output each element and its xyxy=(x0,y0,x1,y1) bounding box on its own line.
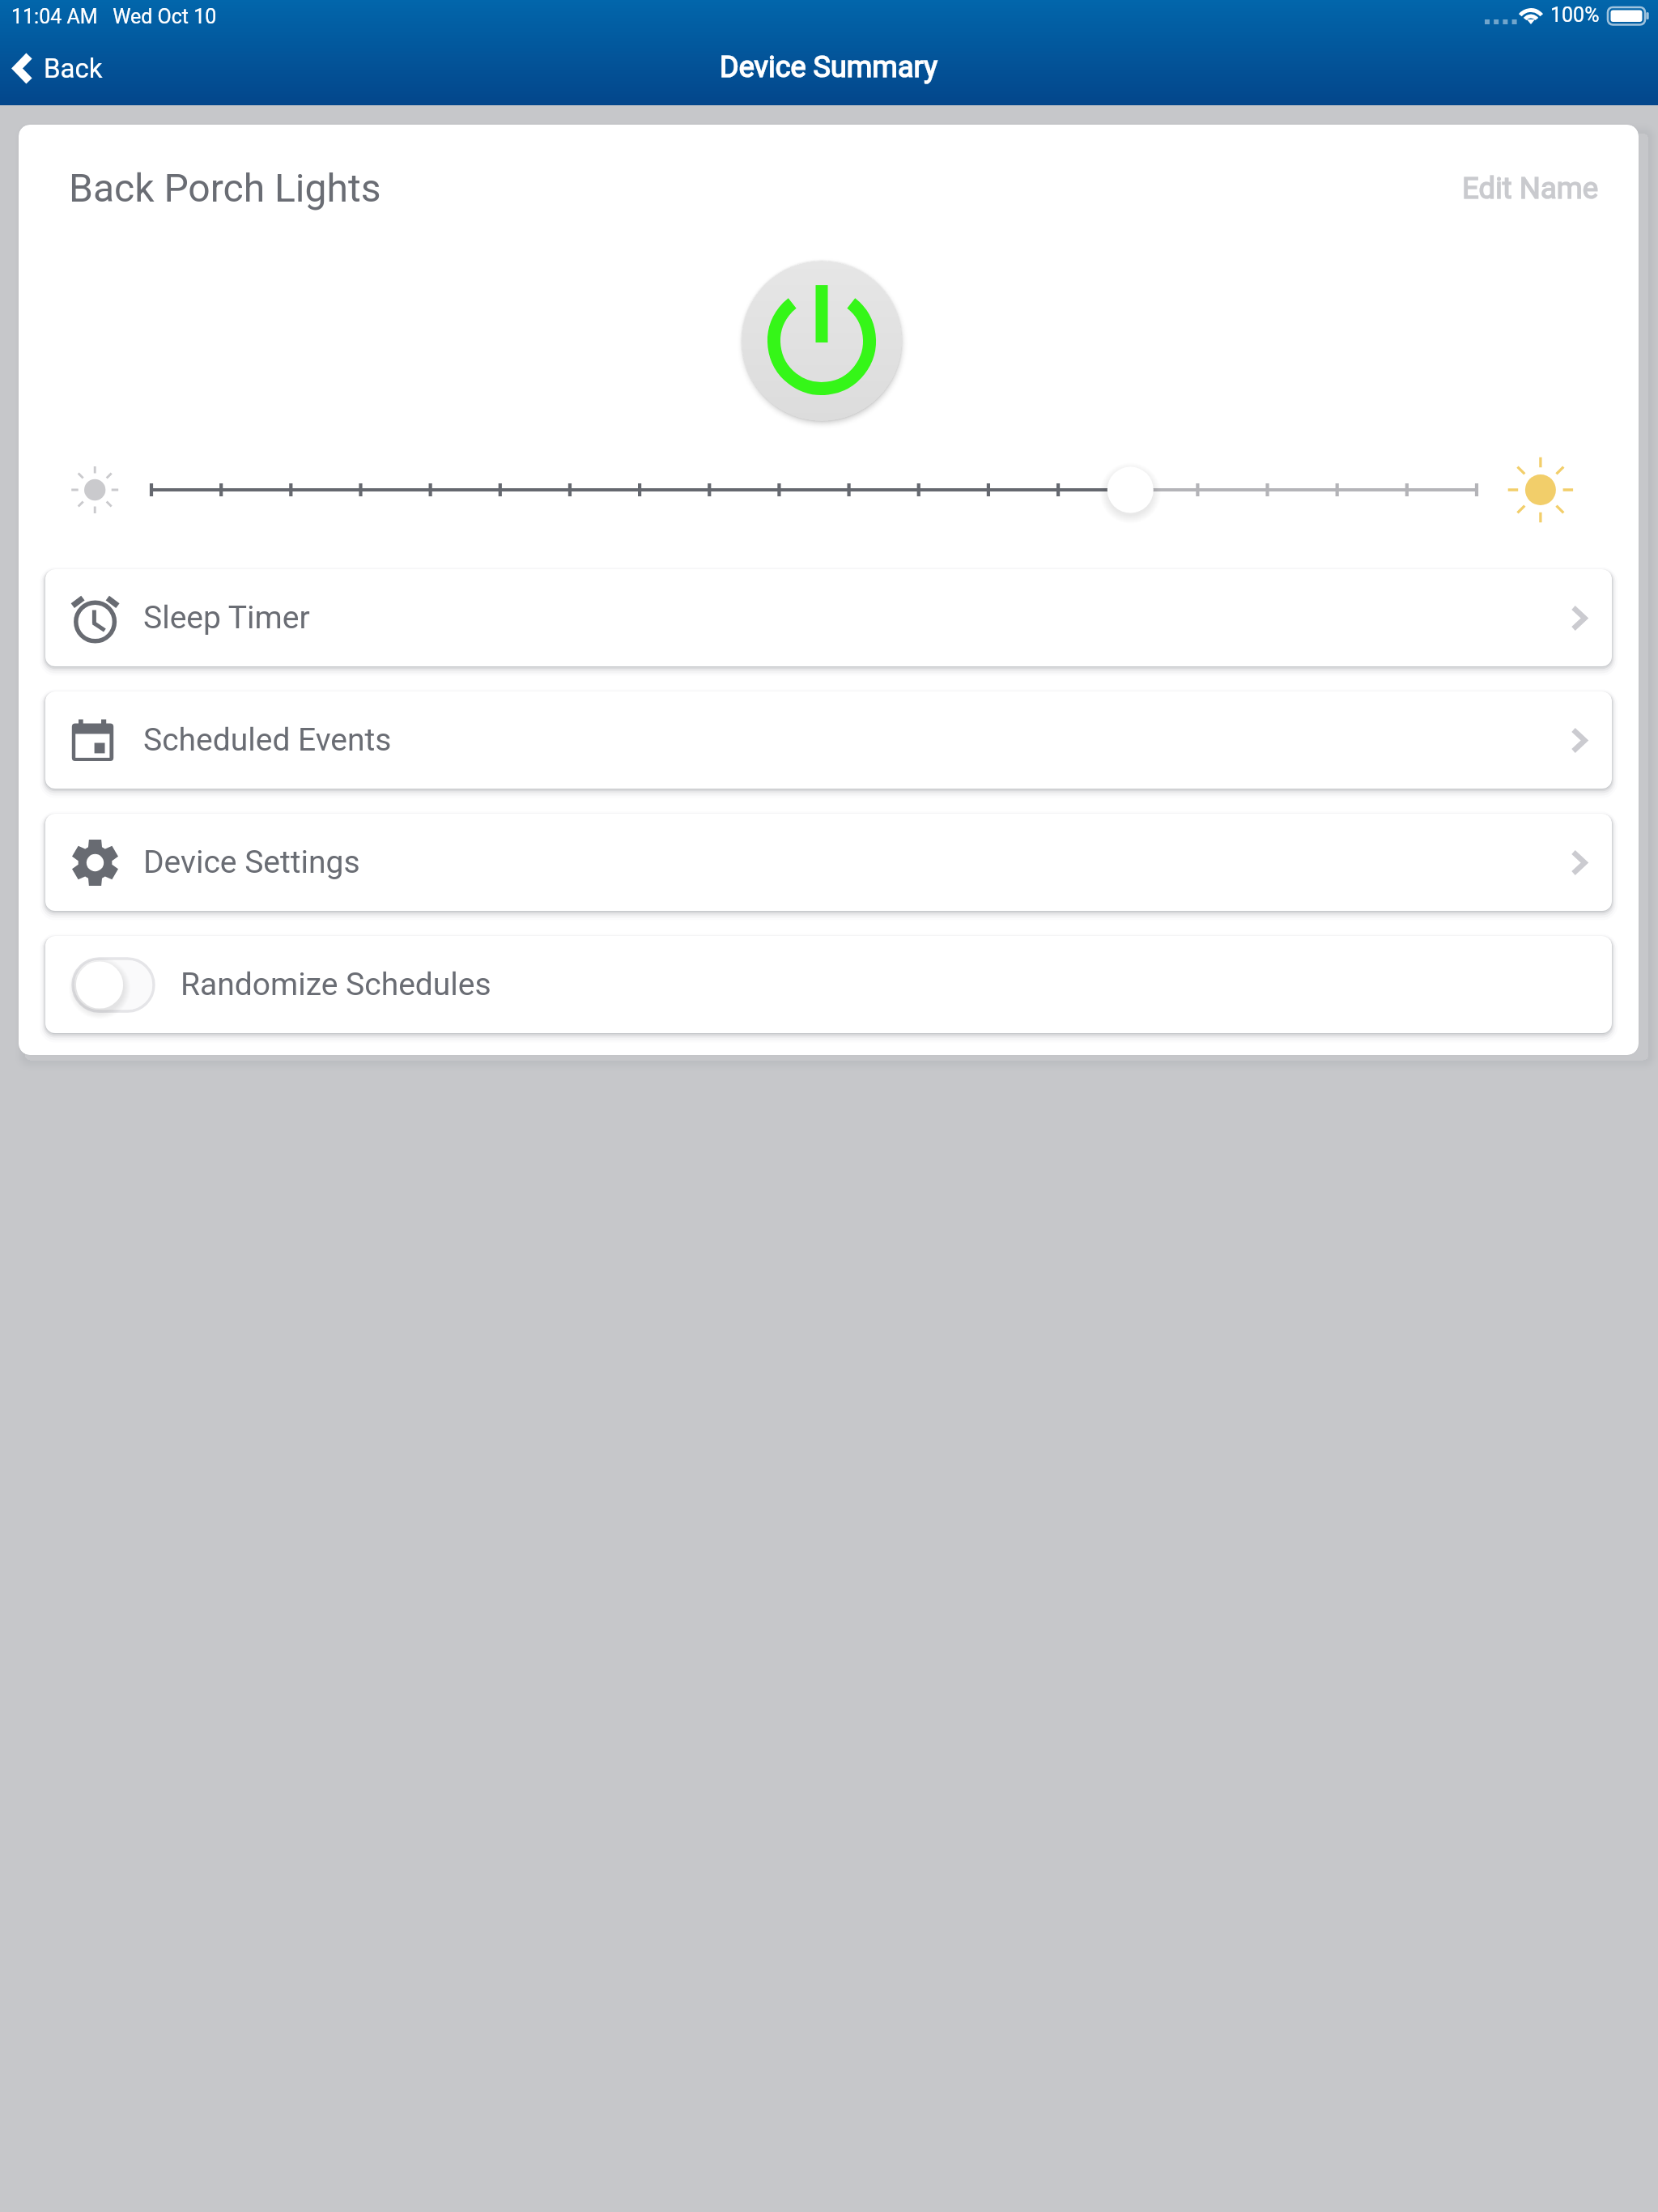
staticText: Back Porch Lights xyxy=(69,165,381,211)
staticText: Back xyxy=(44,53,103,84)
button[interactable]: Brightness xyxy=(19,457,1639,522)
staticText: Device Settings xyxy=(143,844,360,881)
button[interactable]: Power xyxy=(742,261,902,421)
staticText: Scheduled Events xyxy=(143,721,392,759)
button[interactable]: Back xyxy=(0,48,116,89)
staticText: Device Summary xyxy=(720,50,938,84)
staticText: 11:04 AM Wed Oct 10 xyxy=(11,5,217,28)
staticText: Randomize Schedules xyxy=(181,966,491,1003)
button[interactable]: Edit Name xyxy=(1441,161,1639,215)
button[interactable]: Sleep Timer xyxy=(45,569,1612,666)
button[interactable]: Scheduled Events xyxy=(45,691,1612,789)
button[interactable]: Randomize Schedules xyxy=(45,936,1612,1033)
staticText: 100% xyxy=(1550,3,1600,27)
staticText: Edit Name xyxy=(1462,171,1599,206)
button[interactable]: Device Settings xyxy=(45,814,1612,911)
staticText: Sleep Timer xyxy=(143,599,310,636)
